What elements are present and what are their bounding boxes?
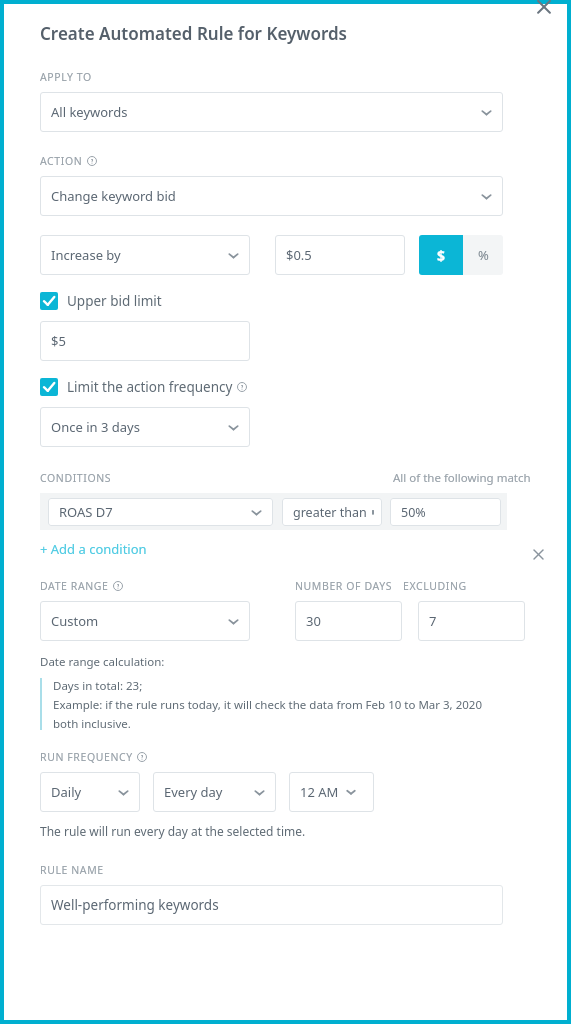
button[interactable]: Well-performing keywords	[40, 885, 503, 925]
button[interactable]: Change keyword bid	[40, 176, 503, 216]
button[interactable]: $0.5	[275, 235, 405, 275]
button[interactable]: All keywords	[40, 92, 503, 132]
staticText: Increase by	[51, 246, 121, 264]
staticText: both inclusive.	[53, 716, 131, 732]
button[interactable]: $	[419, 235, 463, 275]
staticText: greater than	[293, 504, 367, 521]
staticText: DATE RANGE	[40, 579, 109, 593]
button[interactable]: Remove condition	[529, 545, 547, 563]
staticText: $	[437, 246, 446, 265]
button[interactable]: Every day	[153, 772, 276, 812]
staticText: Days in total: 23;	[53, 678, 143, 694]
button[interactable]: Limit the action frequency	[40, 378, 247, 396]
staticText: Upper bid limit	[67, 292, 162, 310]
staticText: 50%	[401, 504, 426, 521]
button[interactable]: Close	[529, 4, 559, 34]
button[interactable]: 7	[418, 601, 525, 641]
staticText: Change keyword bid	[51, 187, 176, 205]
staticText: Create Automated Rule for Keywords	[40, 22, 348, 45]
staticText: ACTION	[40, 154, 83, 168]
staticText: 7	[429, 612, 437, 630]
button[interactable]: 12 AM	[289, 772, 374, 812]
staticText: APPLY TO	[40, 70, 92, 84]
staticText: RUN FREQUENCY	[40, 750, 133, 764]
button[interactable]: Custom	[40, 601, 250, 641]
staticText: %	[478, 246, 489, 264]
staticText: $5	[51, 332, 66, 350]
staticText: All of the following match	[393, 470, 531, 486]
staticText: Well-performing keywords	[51, 896, 219, 914]
staticText: Custom	[51, 612, 99, 630]
button[interactable]: $5	[40, 321, 250, 361]
button[interactable]: greater than	[282, 498, 382, 526]
staticText: EXCLUDING	[403, 579, 467, 593]
button[interactable]: Once in 3 days	[40, 407, 250, 447]
staticText: CONDITIONS	[40, 471, 112, 485]
staticText: Limit the action frequency	[67, 378, 233, 396]
staticText: All keywords	[51, 103, 128, 121]
button[interactable]: Daily	[40, 772, 140, 812]
button[interactable]: Upper bid limit	[40, 292, 162, 310]
staticText: $0.5	[286, 246, 312, 264]
staticText: Every day	[164, 783, 223, 801]
staticText: RULE NAME	[40, 863, 104, 877]
staticText: Daily	[51, 783, 82, 801]
staticText: 30	[306, 612, 321, 630]
staticText: ROAS D7	[59, 503, 113, 521]
staticText: Once in 3 days	[51, 418, 140, 436]
button[interactable]: %	[463, 235, 503, 275]
staticText: The rule will run every day at the selec…	[40, 823, 306, 839]
button[interactable]: + Add a condition	[40, 540, 147, 558]
button[interactable]: 30	[295, 601, 402, 641]
button[interactable]: 50%	[390, 498, 501, 526]
staticText: Date range calculation:	[40, 654, 165, 670]
staticText: Example: if the rule runs today, it will…	[53, 697, 482, 713]
staticText: NUMBER OF DAYS	[295, 579, 393, 593]
button[interactable]: ROAS D7	[48, 498, 273, 526]
staticText: 12 AM	[300, 783, 339, 801]
button[interactable]: Increase by	[40, 235, 250, 275]
